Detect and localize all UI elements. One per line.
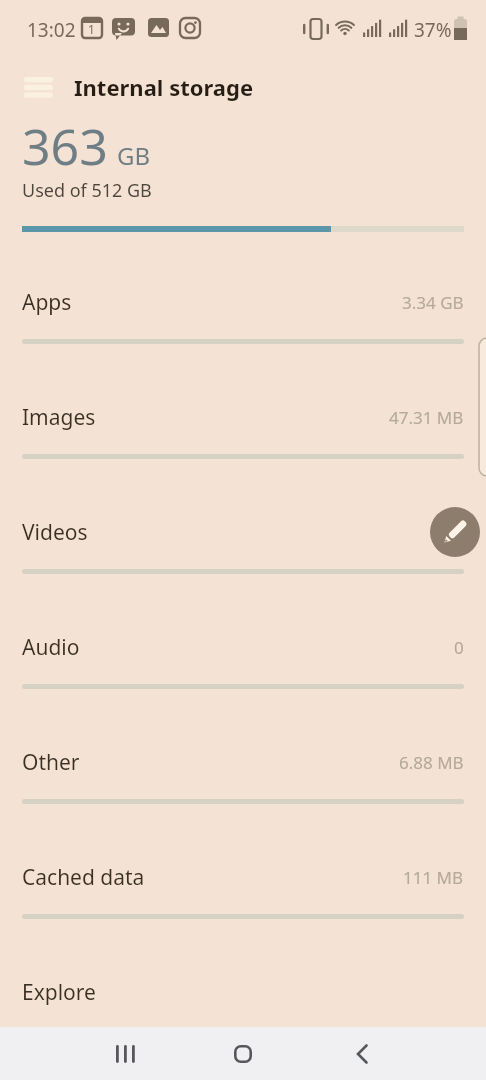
button[interactable]: Images — [0, 389, 486, 445]
staticText: 111 MB — [403, 866, 464, 889]
button[interactable] — [332, 1027, 392, 1080]
button[interactable] — [213, 1027, 273, 1080]
staticText: 13:02 — [27, 17, 76, 43]
staticText: Videos — [22, 518, 88, 547]
staticText: Images — [22, 403, 96, 432]
button[interactable]: Apps — [0, 274, 486, 330]
staticText: 0 — [454, 636, 464, 659]
button[interactable] — [16, 70, 60, 104]
staticText: Cached data — [22, 863, 145, 892]
button[interactable]: Videos — [0, 504, 486, 560]
staticText: Other — [22, 748, 80, 777]
staticText: 37% — [414, 17, 452, 43]
staticText: 47.31 MB — [389, 406, 464, 429]
button[interactable]: Cached data — [0, 849, 486, 905]
button[interactable] — [95, 1027, 155, 1080]
staticText: 3.34 GB — [402, 291, 464, 314]
staticText: Internal storage — [74, 72, 254, 102]
button[interactable] — [430, 507, 480, 557]
staticText: Audio — [22, 633, 80, 662]
button[interactable]: Other — [0, 734, 486, 790]
staticText: GB — [117, 139, 151, 172]
button[interactable]: Explore — [0, 964, 486, 1020]
button[interactable]: Audio — [0, 619, 486, 675]
staticText: Apps — [22, 288, 72, 317]
staticText: 6.88 MB — [399, 751, 464, 774]
staticText: Explore — [22, 978, 96, 1007]
staticText: Used of 512 GB — [22, 178, 152, 203]
staticText: 1 — [88, 21, 95, 37]
staticText: 363 — [22, 112, 108, 180]
